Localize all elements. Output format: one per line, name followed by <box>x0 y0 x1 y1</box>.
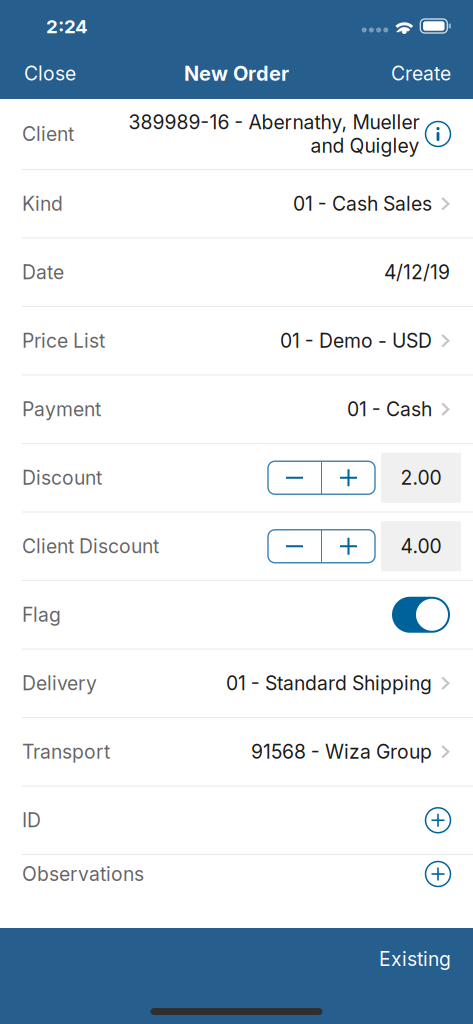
button[interactable]: Flag toggle <box>392 597 450 633</box>
button[interactable]: Increase <box>322 461 375 494</box>
staticText: 01 - Cash <box>347 398 432 421</box>
staticText: 389989-16 - Abernathy, Mueller and Quigl… <box>128 111 419 157</box>
button[interactable]: Add ID <box>425 807 451 833</box>
button[interactable]: Kind <box>0 170 473 237</box>
staticText: New Order <box>184 61 289 86</box>
staticText: Observations <box>22 862 144 886</box>
staticText: 01 - Demo - USD <box>280 329 432 352</box>
staticText: Client Discount <box>22 535 159 558</box>
staticText: Create <box>391 62 451 85</box>
button[interactable]: Increase <box>322 530 375 563</box>
staticText: Close <box>24 62 76 85</box>
button[interactable]: Add Observations <box>425 861 451 887</box>
staticText: 2.00 <box>400 466 441 489</box>
button[interactable]: Create <box>377 50 473 96</box>
button[interactable]: Transport <box>0 718 473 785</box>
staticText: Transport <box>22 740 110 763</box>
staticText: Payment <box>22 398 101 421</box>
staticText: 01 - Cash Sales <box>293 192 432 215</box>
button[interactable]: Existing <box>365 934 473 984</box>
button[interactable]: Decrease <box>268 461 321 494</box>
staticText: Existing <box>379 947 451 971</box>
button[interactable]: Payment <box>0 375 473 443</box>
button[interactable]: Decrease <box>268 530 321 563</box>
staticText: Client <box>22 122 74 146</box>
staticText: Flag <box>22 603 61 626</box>
staticText: Discount <box>22 466 102 489</box>
button[interactable]: Client <box>0 99 473 169</box>
staticText: 4.00 <box>400 535 441 558</box>
staticText: Delivery <box>22 672 97 695</box>
button[interactable]: Price List <box>0 307 473 374</box>
staticText: Kind <box>22 192 63 215</box>
staticText: Date <box>22 261 64 284</box>
staticText: Price List <box>22 329 105 352</box>
staticText: 01 - Standard Shipping <box>226 672 432 695</box>
button[interactable]: Delivery <box>0 649 473 717</box>
staticText: ID <box>22 809 41 832</box>
button[interactable]: Close <box>0 50 90 96</box>
staticText: 4/12/19 <box>384 261 450 284</box>
staticText: 2:24 <box>46 15 88 38</box>
staticText: 91568 - Wiza Group <box>251 740 432 763</box>
